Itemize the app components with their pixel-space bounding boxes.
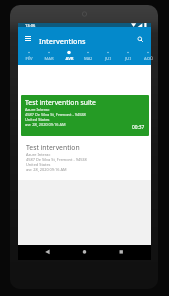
button[interactable]: V [16,65,31,85]
staticText: 4587 De Silva St, Fremont - 94538 [26,157,87,162]
button[interactable]: FÉV [19,48,39,65]
staticText: United States [25,117,50,122]
staticText: 4587 De Silva St, Fremont - 94538 [25,112,86,117]
button[interactable]: MAI [78,48,98,65]
staticText: Azure Interac [26,152,51,157]
button[interactable]: JUI [98,48,118,65]
button[interactable]: MAR [39,48,59,65]
staticText: AVR [65,56,74,62]
staticText: MAR [44,56,54,62]
staticText: avr. 28, 2020 09:16 AM [26,167,67,172]
staticText: 00:37 [132,124,145,131]
button[interactable]: Test intervention suite [21,95,149,136]
button[interactable]: JUI [118,48,138,65]
staticText: JUI [105,56,111,62]
staticText: Interventions [39,36,86,46]
staticText: Test intervention suite [25,98,96,107]
staticText: Test intervention [26,143,80,152]
button[interactable]: AOÛ [138,48,158,65]
staticText: 13:06 [25,23,36,27]
button[interactable]: AVR [59,48,79,65]
staticText: avr. 28, 2020 09:16 AM [25,122,66,127]
staticText: AOÛ [144,56,153,62]
staticText: JUI [125,56,131,62]
staticText: MAI [84,56,92,62]
button[interactable]: Open navigation drawer [21,32,34,45]
staticText: Azure Interac [25,107,50,112]
button[interactable]: Search [134,33,147,46]
button[interactable]: Test intervention [22,140,149,180]
staticText: United States [26,162,51,167]
staticText: FÉV [25,56,33,62]
